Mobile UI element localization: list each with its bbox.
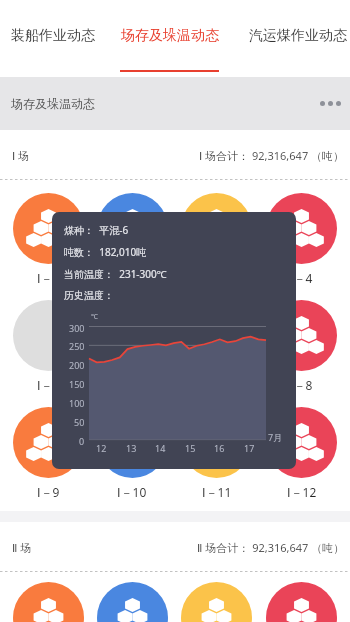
button[interactable]: Ⅰ－4: [259, 180, 344, 287]
staticText: 煤种： 平混-6: [64, 223, 129, 237]
staticText: 历史温度：: [64, 289, 114, 302]
staticText: 250: [69, 340, 85, 352]
staticText: 场存及垛温动态: [11, 96, 95, 111]
button[interactable]: Ⅰ－8: [259, 287, 344, 394]
button[interactable]: Ⅱ－3: [174, 569, 259, 622]
staticText: Ⅰ－9: [37, 484, 60, 500]
button[interactable]: Ⅰ－12: [259, 394, 344, 501]
staticText: 15: [185, 442, 196, 454]
staticText: Ⅰ－8: [290, 377, 313, 393]
button[interactable]: Ⅱ－4: [259, 569, 344, 622]
staticText: 150: [69, 378, 85, 390]
staticText: 14: [155, 442, 166, 454]
button[interactable]: Ⅱ－2: [90, 569, 174, 622]
button[interactable]: 装船作业动态: [11, 0, 95, 77]
staticText: 汽运煤作业动态: [249, 27, 347, 45]
staticText: Ⅰ 场: [12, 148, 30, 163]
staticText: Ⅰ－5: [37, 377, 60, 393]
button[interactable]: Ⅰ－11: [174, 394, 259, 501]
staticText: 200: [69, 359, 85, 371]
button[interactable]: Ⅰ－7: [174, 287, 259, 394]
staticText: 当前温度： 231-300℃: [64, 267, 167, 281]
staticText: 12: [96, 442, 107, 454]
button[interactable]: Ⅰ－9: [6, 394, 90, 501]
button[interactable]: Ⅰ－5: [6, 287, 90, 394]
staticText: 0: [79, 435, 85, 447]
staticText: 300: [69, 322, 85, 334]
button[interactable]: 场存及垛温动态: [0, 77, 350, 130]
button[interactable]: 煤种： 平混-6: [52, 212, 296, 469]
button[interactable]: Ⅰ－3: [174, 180, 259, 287]
button[interactable]: 汽运煤作业动态: [248, 0, 347, 77]
button[interactable]: Ⅰ－1: [6, 180, 90, 287]
button[interactable]: Ⅰ－2: [90, 180, 174, 287]
staticText: Ⅰ－4: [290, 270, 313, 286]
staticText: Ⅰ 场合计： 92,316,647 （吨）: [199, 148, 345, 163]
staticText: Ⅰ－12: [287, 484, 317, 500]
staticText: ℃: [91, 312, 98, 322]
button[interactable]: More options: [320, 101, 341, 106]
staticText: 50: [74, 416, 85, 428]
staticText: Ⅱ 场合计： 92,316,647 （吨）: [197, 540, 345, 555]
staticText: 16: [214, 442, 225, 454]
button[interactable]: Ⅱ－1: [6, 569, 90, 622]
staticText: 装船作业动态: [11, 27, 95, 45]
staticText: 100: [69, 397, 85, 409]
staticText: 7月: [268, 431, 283, 443]
staticText: 17: [244, 442, 255, 454]
button[interactable]: Ⅰ－10: [90, 394, 174, 501]
staticText: 13: [126, 442, 137, 454]
staticText: Ⅱ 场: [12, 540, 32, 555]
staticText: 吨数： 182,010吨: [64, 245, 147, 259]
staticText: Ⅰ－11: [202, 484, 232, 500]
staticText: Ⅰ－2: [121, 270, 144, 286]
staticText: 场存及垛温动态: [121, 27, 219, 45]
staticText: Ⅰ－1: [37, 270, 60, 286]
staticText: Ⅰ－10: [117, 484, 147, 500]
button[interactable]: 场存及垛温动态: [120, 0, 219, 77]
button[interactable]: Ⅰ－6: [90, 287, 174, 394]
